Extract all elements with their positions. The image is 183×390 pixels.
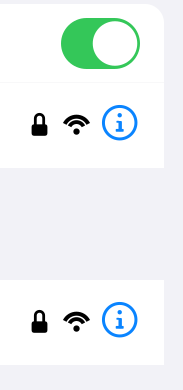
button[interactable]: Wi-Fi, on [0, 4, 164, 83]
button[interactable]: Wi-Fi network, secured [0, 83, 164, 168]
button[interactable]: Network details [101, 301, 139, 339]
button[interactable]: Network details [101, 104, 139, 142]
button[interactable]: Wi-Fi network, secured [0, 280, 164, 365]
